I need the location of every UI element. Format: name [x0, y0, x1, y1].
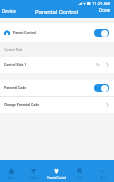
- button[interactable]: Control Rule 1: [0, 57, 114, 73]
- button[interactable]: Change Parental Code: [0, 97, 114, 113]
- staticText: Parent Control: [13, 31, 36, 35]
- staticText: Control Rule: [4, 48, 23, 52]
- staticText: Home: [8, 177, 15, 180]
- button[interactable]: Parent Control: [0, 23, 114, 42]
- staticText: Wireless: [29, 177, 39, 180]
- staticText: Control Rule 1: [4, 63, 27, 67]
- button[interactable]: QoS: [68, 160, 91, 182]
- staticText: Device: [2, 9, 16, 14]
- button[interactable]: Wireless: [22, 160, 45, 182]
- button[interactable]: Device: [0, 7, 18, 18]
- staticText: More: [100, 177, 106, 180]
- staticText: Change Parental Code: [4, 103, 40, 107]
- button[interactable]: Toggle: [94, 29, 109, 37]
- staticText: Parental Code: [4, 86, 27, 90]
- button[interactable]: Parental Control: [45, 160, 68, 182]
- button[interactable]: Done: [97, 6, 114, 18]
- button[interactable]: Parental Code: [0, 80, 114, 96]
- staticText: Parental Control: [47, 177, 66, 180]
- button[interactable]: Home: [0, 160, 22, 182]
- staticText: Done: [99, 8, 111, 14]
- staticText: Parental Control: [35, 8, 79, 15]
- button[interactable]: Toggle: [94, 84, 109, 92]
- button[interactable]: More: [91, 160, 114, 182]
- staticText: 11:29 AM: [92, 1, 110, 6]
- staticText: On: [96, 63, 101, 67]
- staticText: QoS: [77, 177, 82, 180]
